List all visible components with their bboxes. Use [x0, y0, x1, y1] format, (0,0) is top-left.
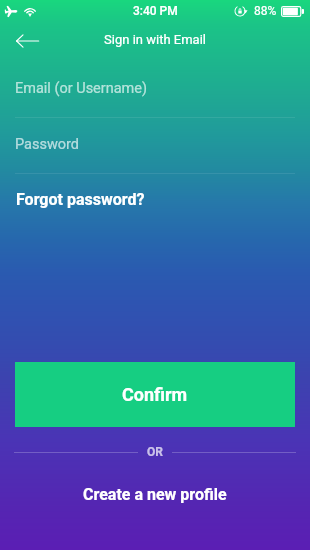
staticText: Forgot password?	[16, 190, 145, 209]
button[interactable]: Forgot password?	[15, 188, 146, 211]
staticText: Email (or Username)	[15, 80, 148, 97]
button[interactable]: Create a new profile	[77, 483, 233, 506]
staticText: OR	[147, 445, 163, 459]
staticText: 88%	[254, 4, 277, 18]
button[interactable]: Back	[8, 20, 48, 58]
staticText: 3:40 PM	[133, 4, 178, 18]
staticText: Create a new profile	[83, 485, 227, 504]
button[interactable]: Confirm	[15, 362, 295, 427]
staticText: Confirm	[122, 384, 188, 405]
staticText: Sign in with Email	[104, 32, 206, 47]
staticText: Password	[15, 136, 80, 153]
